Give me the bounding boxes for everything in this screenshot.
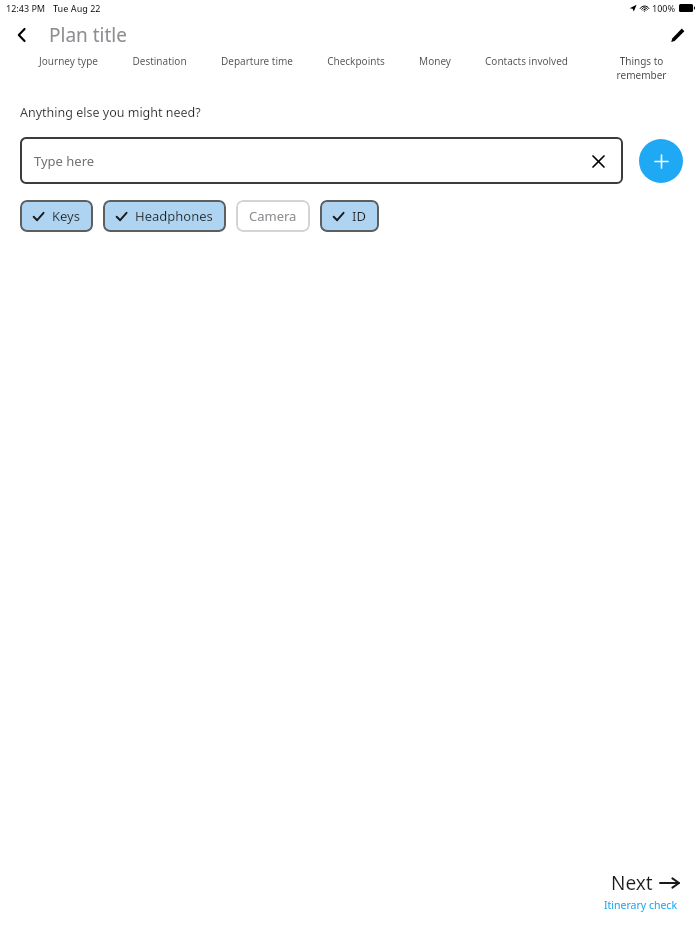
button[interactable]: Camera <box>236 200 310 232</box>
staticText: Type here <box>34 152 587 170</box>
staticText: Itinerary check <box>604 898 678 912</box>
button[interactable]: Next <box>606 870 680 912</box>
button[interactable]: Destination <box>123 54 196 77</box>
button[interactable]: Back <box>6 19 38 51</box>
staticText: Checkpoints <box>327 54 385 68</box>
staticText: Departure time <box>221 54 293 68</box>
staticText: 12:43 PM <box>6 2 46 14</box>
staticText: Camera <box>249 207 297 225</box>
staticText: Plan title <box>49 22 127 48</box>
staticText: Next <box>611 870 653 896</box>
staticText: 100% <box>652 2 676 14</box>
staticText: Journey type <box>39 54 98 68</box>
button[interactable]: Contacts involved <box>476 54 577 77</box>
staticText: Contacts involved <box>485 54 568 68</box>
button[interactable]: Departure time <box>212 54 302 77</box>
staticText: Tue Aug 22 <box>53 2 101 14</box>
button[interactable]: Money <box>410 54 460 77</box>
button[interactable]: Edit <box>661 19 693 51</box>
button[interactable]: Clear text <box>587 150 609 172</box>
button[interactable]: Things to remember <box>593 54 690 86</box>
staticText: Keys <box>52 207 80 225</box>
button[interactable]: Headphones <box>103 200 226 232</box>
button[interactable]: ID <box>320 200 379 232</box>
staticText: Things to remember <box>602 54 681 82</box>
button[interactable]: Type here <box>20 137 623 184</box>
button[interactable]: Keys <box>20 200 93 232</box>
button[interactable]: Checkpoints <box>318 54 394 77</box>
button[interactable]: Journey type <box>30 54 107 77</box>
staticText: ID <box>352 207 366 225</box>
staticText: Destination <box>132 54 187 68</box>
staticText: Anything else you might need? <box>20 104 201 121</box>
button[interactable]: Add item <box>639 139 683 183</box>
staticText: Headphones <box>135 207 213 225</box>
staticText: Money <box>419 54 451 68</box>
